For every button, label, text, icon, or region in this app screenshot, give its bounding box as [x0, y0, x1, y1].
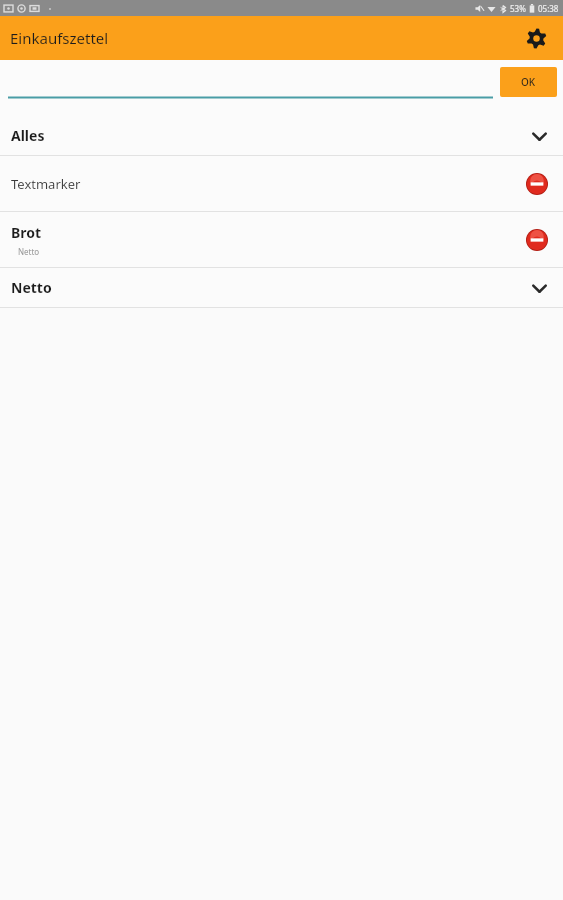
staticText: Alles	[11, 126, 45, 145]
staticText: Netto	[18, 246, 40, 257]
other: Expand Netto	[526, 275, 552, 301]
button[interactable]: Textmarker	[0, 156, 563, 211]
other: Expand Alles	[526, 123, 552, 149]
staticText: Brot	[11, 223, 42, 242]
button[interactable]: Remove Brot	[522, 225, 552, 255]
button[interactable]: Alles	[0, 116, 563, 155]
button[interactable]: Netto	[0, 268, 563, 307]
button[interactable]: Remove Textmarker	[522, 169, 552, 199]
button[interactable]: Brot	[0, 212, 563, 267]
staticText: Einkaufszettel	[10, 28, 109, 48]
staticText: 53%	[510, 3, 526, 14]
staticText: Textmarker	[11, 175, 81, 193]
button[interactable]: OK	[500, 67, 557, 97]
button[interactable]: Settings	[519, 21, 553, 55]
staticText: Netto	[11, 278, 52, 297]
staticText: OK	[521, 75, 536, 89]
staticText: 05:38	[538, 3, 559, 14]
button[interactable]: New item text field	[8, 96, 493, 99]
